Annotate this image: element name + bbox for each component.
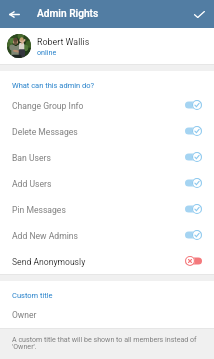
button[interactable]: Add Users (0, 170, 214, 196)
staticText: Ban Users (12, 153, 51, 163)
button[interactable]: Change Group Info (0, 92, 214, 118)
staticText: Add Users (12, 179, 52, 189)
staticText: Robert Wallis (37, 37, 90, 47)
staticText: Pin Messages (12, 205, 66, 215)
staticText: Custom title (12, 291, 53, 300)
button[interactable]: Delete Messages (0, 118, 214, 144)
button[interactable]: Owner (0, 302, 214, 328)
button[interactable]: Send Anonymously (0, 248, 214, 274)
staticText: Add New Admins (12, 231, 78, 241)
button[interactable]: Done (186, 0, 213, 28)
staticText: What can this admin do? (12, 81, 95, 90)
staticText: Owner (12, 310, 37, 320)
staticText: Change Group Info (12, 101, 84, 111)
staticText: Admin Rights (37, 8, 99, 20)
staticText: Send Anonymously (12, 257, 86, 267)
button[interactable]: Robert Wallis (0, 28, 214, 64)
button[interactable]: Back (0, 0, 28, 28)
button[interactable]: Ban Users (0, 144, 214, 170)
button[interactable]: Pin Messages (0, 196, 214, 222)
staticText: online (37, 48, 57, 56)
staticText: A custom title that will be shown to all… (12, 335, 204, 350)
button[interactable]: Add New Admins (0, 222, 214, 248)
staticText: Delete Messages (12, 127, 78, 137)
